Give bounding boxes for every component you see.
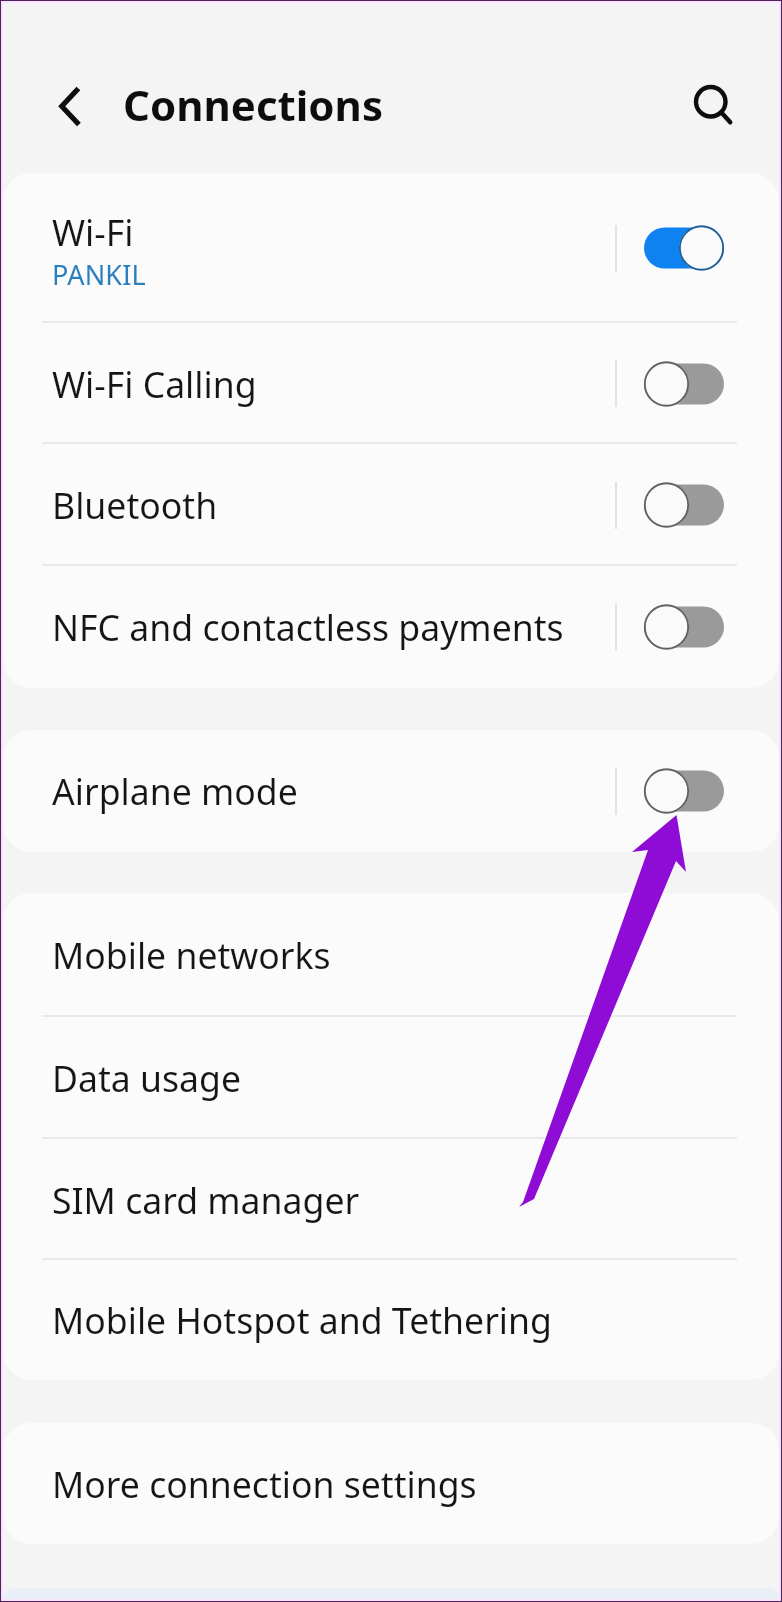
button[interactable]: Bluetooth [3,444,779,566]
button[interactable]: Off [644,766,726,816]
button[interactable]: NFC and contactless payments [3,566,779,688]
button[interactable]: Wi-Fi Calling [3,323,779,444]
staticText: Bluetooth [52,481,218,529]
button[interactable]: Off [644,602,726,652]
staticText: Wi-Fi Calling [52,360,257,408]
staticText: Mobile networks [52,931,331,979]
button[interactable]: SIM card manager [3,1139,779,1260]
staticText: NFC and contactless payments [52,603,564,651]
button[interactable]: Search [687,76,743,132]
staticText: Data usage [52,1054,242,1102]
staticText: Airplane mode [52,767,298,815]
button[interactable]: Off [644,480,726,530]
staticText: SIM card manager [52,1176,360,1224]
button[interactable]: Mobile networks [3,893,779,1017]
staticText: More connection settings [52,1460,477,1508]
button[interactable]: Wi-Fi [3,173,779,323]
button[interactable]: Off [644,359,726,409]
button[interactable]: Data usage [3,1017,779,1139]
staticText: Connections [123,76,383,133]
button[interactable]: Mobile Hotspot and Tethering [3,1260,779,1380]
button[interactable]: More connection settings [3,1423,779,1544]
staticText: Wi-Fi [52,208,134,256]
button[interactable]: Back [36,78,88,130]
button[interactable]: On [644,223,726,273]
staticText: PANKIL [52,256,146,293]
button[interactable]: Airplane mode [3,730,779,852]
staticText: Mobile Hotspot and Tethering [52,1296,552,1344]
